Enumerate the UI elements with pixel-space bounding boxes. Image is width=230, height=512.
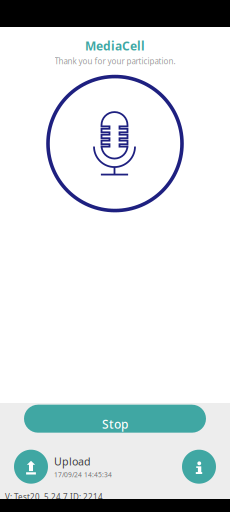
button[interactable]: Stop (24, 405, 206, 433)
button[interactable]: Information (182, 450, 216, 484)
staticText: V: Test20_5.24.7 ID: 2214 (5, 492, 103, 502)
staticText: MediaCell (85, 38, 145, 54)
button[interactable]: Upload (14, 450, 112, 484)
staticText: Thank you for your participation. (54, 56, 175, 66)
staticText: Upload (54, 454, 91, 468)
staticText: 17/09/24 14:45:34 (54, 470, 112, 479)
staticText: Stop (102, 416, 128, 432)
